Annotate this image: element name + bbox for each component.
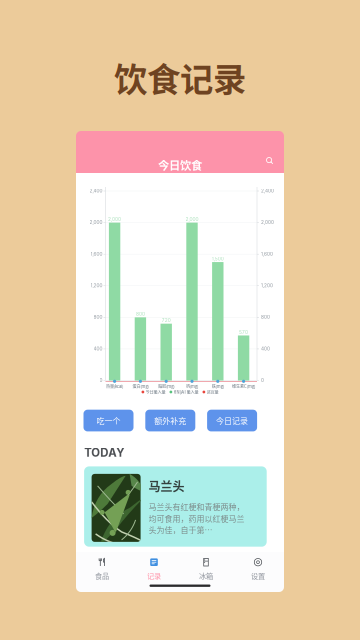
button[interactable]: 额外补充 [145,410,195,431]
staticText: 0 [261,377,264,383]
staticText: 2,000 [89,220,102,225]
staticText: 800 [261,314,270,320]
staticText: 2,000 [185,216,198,222]
staticText: 今日摄入量 [145,389,165,395]
staticText: 吃一个 [96,415,120,426]
staticText: 铁(mg) [212,383,224,389]
staticText: 720 [162,317,171,323]
staticText: 记录 [147,570,161,581]
staticText: 570 [239,329,248,335]
button[interactable]: 吃一个 [83,410,133,431]
staticText: 2,000 [261,220,274,225]
staticText: 今日饮食 [158,156,202,173]
staticText: 脂肪(mg) [158,383,174,389]
staticText: 1,500 [212,256,224,262]
button[interactable]: 设置 [232,557,284,583]
button[interactable]: 冰箱 [180,557,232,583]
button[interactable]: 记录 [128,557,180,583]
staticText: 2,400 [261,188,274,194]
staticText: RNI/AI 摄入量 [173,389,198,395]
staticText: 马兰头有红梗和青梗两种，均可食用，药用以红梗马兰头为佳，自于第… [149,501,245,536]
staticText: 热量(kcal) [106,383,123,389]
staticText: 适宜量 [206,389,218,395]
staticText: 今日记录 [216,415,248,426]
staticText: 1,600 [90,251,102,257]
staticText: TODAY [84,446,124,459]
button[interactable]: 马兰头 [84,466,267,547]
staticText: 0 [99,377,102,383]
staticText: 额外补充 [154,415,186,426]
staticText: 2,400 [89,188,102,194]
staticText: 钙(mg) [186,383,198,389]
staticText: 冰箱 [199,570,213,581]
staticText: 800 [93,314,102,320]
staticText: 马兰头 [149,477,185,495]
staticText: 饮食记录 [114,53,246,101]
staticText: 蛋白(mg) [132,383,148,389]
staticText: 1,600 [261,251,273,257]
staticText: 2,000 [108,216,121,222]
button[interactable]: 今日记录 [207,410,257,431]
button[interactable]: 搜索 [263,154,277,168]
staticText: 维生素C(mg) [232,383,255,389]
staticText: 食品 [95,570,109,581]
button[interactable]: 食品 [76,557,128,583]
staticText: 设置 [251,570,265,581]
staticText: 400 [261,346,270,351]
staticText: 1,200 [90,283,102,288]
staticText: 1,200 [261,283,273,288]
staticText: 400 [93,346,102,351]
staticText: 800 [136,311,145,317]
